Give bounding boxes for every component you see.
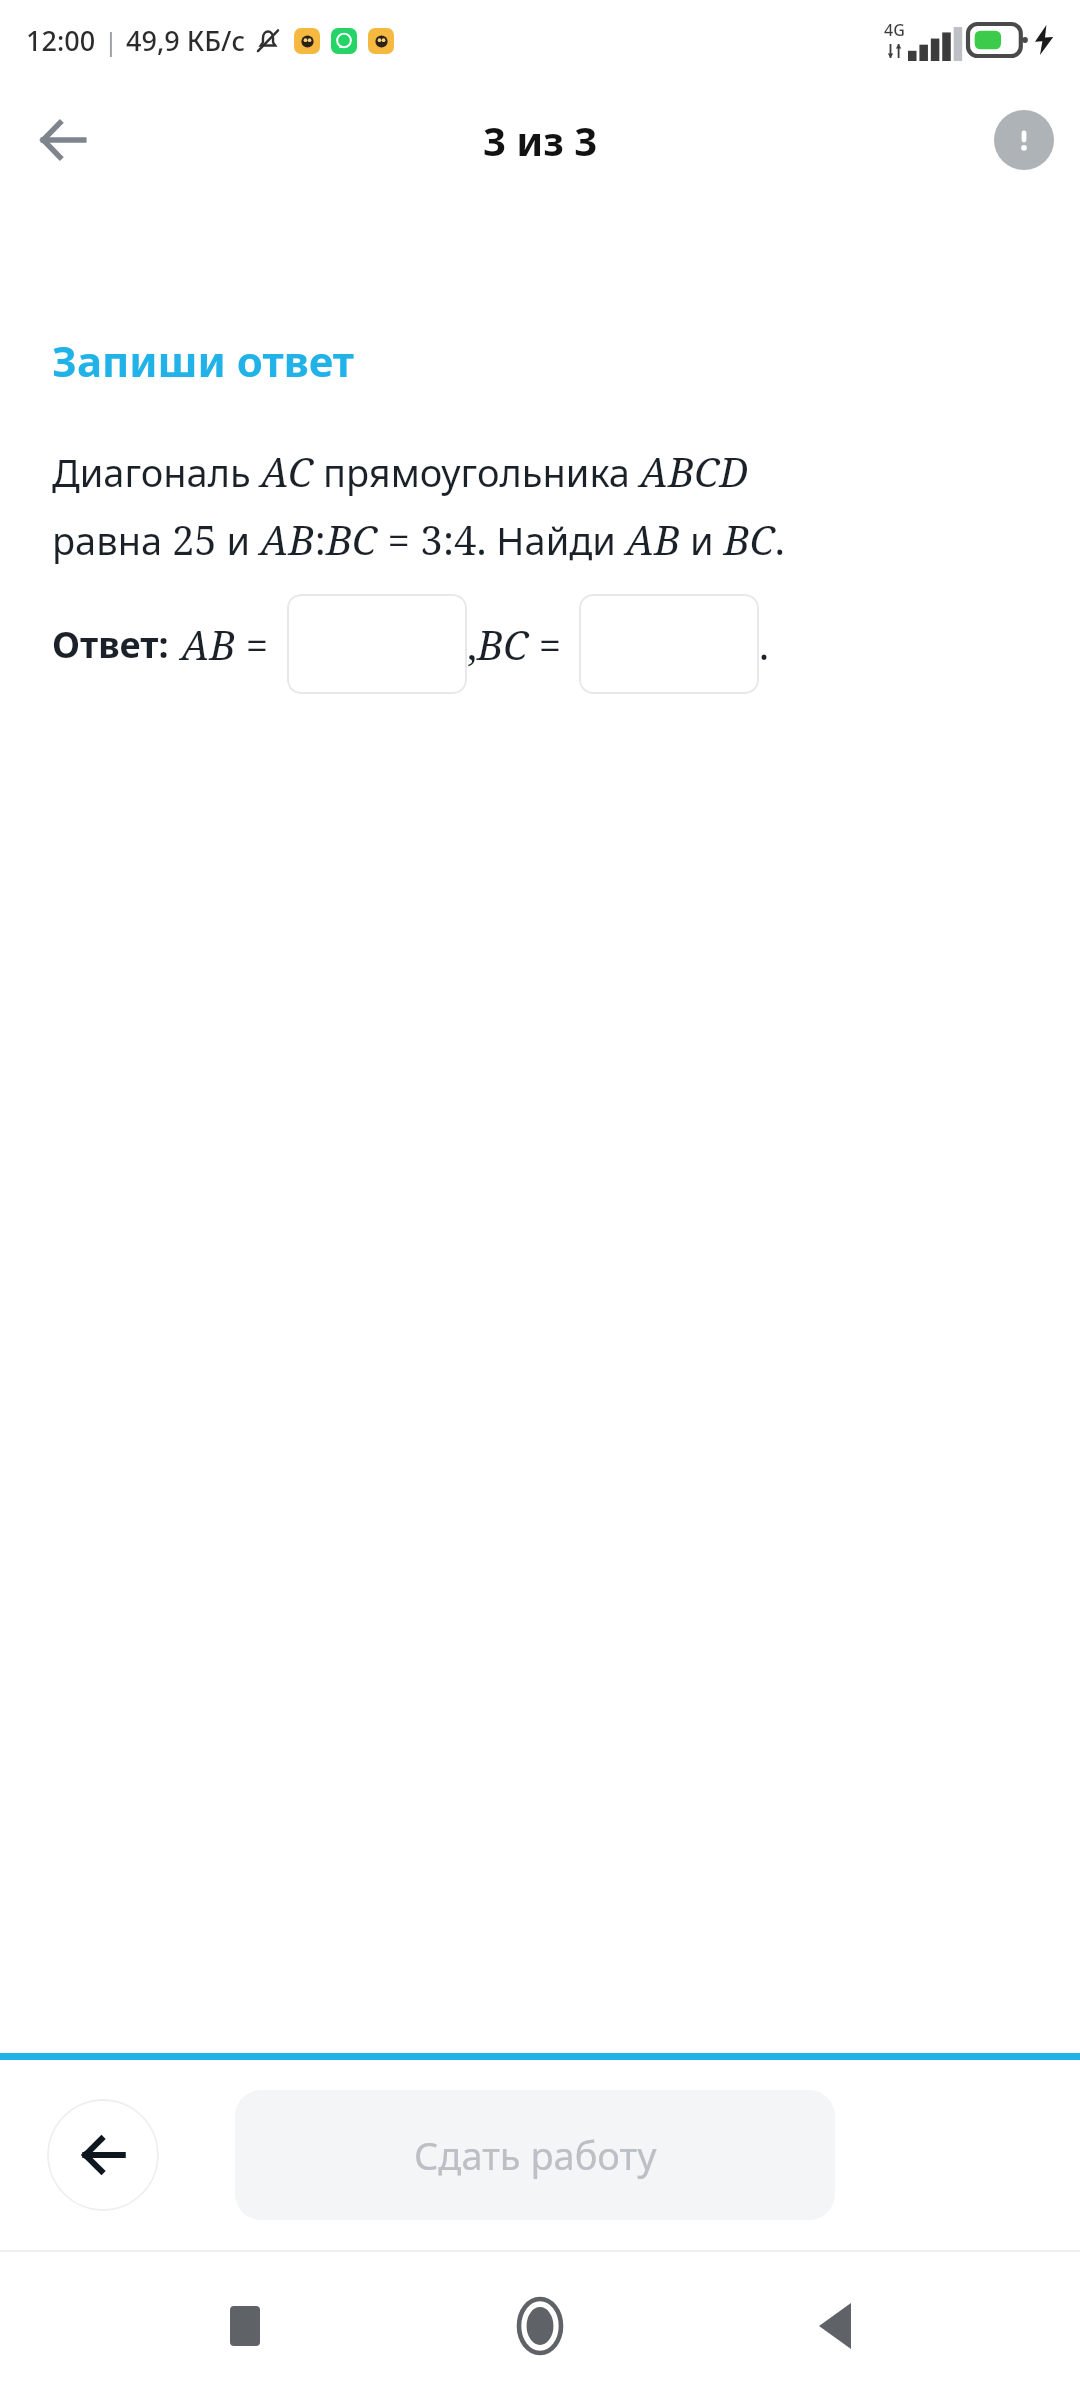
staticText: 12:00 — [26, 22, 96, 59]
staticText: равна 25 и AB:BC = 3:4. Найди AB и BC. — [52, 512, 785, 566]
staticText: Сдать работу — [414, 2129, 657, 2181]
button[interactable]: Previous — [47, 2099, 159, 2211]
staticText: 3 из 3 — [483, 113, 598, 167]
button[interactable]: Answer input — [579, 594, 759, 694]
staticText: 49,9 КБ/с — [126, 22, 245, 59]
staticText: 4G — [884, 19, 905, 41]
staticText: ,BC = — [467, 617, 561, 671]
staticText: Ответ: — [52, 620, 169, 669]
staticText: . — [759, 617, 769, 671]
button[interactable]: Back — [22, 100, 102, 180]
button[interactable]: Сдать работу — [235, 2090, 835, 2220]
button[interactable]: Back — [785, 2276, 885, 2376]
staticText: Запиши ответ — [52, 332, 355, 389]
staticText: AB = — [181, 617, 269, 671]
button[interactable]: More info — [994, 110, 1054, 170]
button[interactable]: Home — [490, 2276, 590, 2376]
staticText: Диагональ AC прямоугольника ABCD — [52, 444, 749, 498]
button[interactable]: Answer input — [287, 594, 467, 694]
button[interactable]: Recents — [195, 2276, 295, 2376]
staticText: | — [104, 24, 118, 58]
